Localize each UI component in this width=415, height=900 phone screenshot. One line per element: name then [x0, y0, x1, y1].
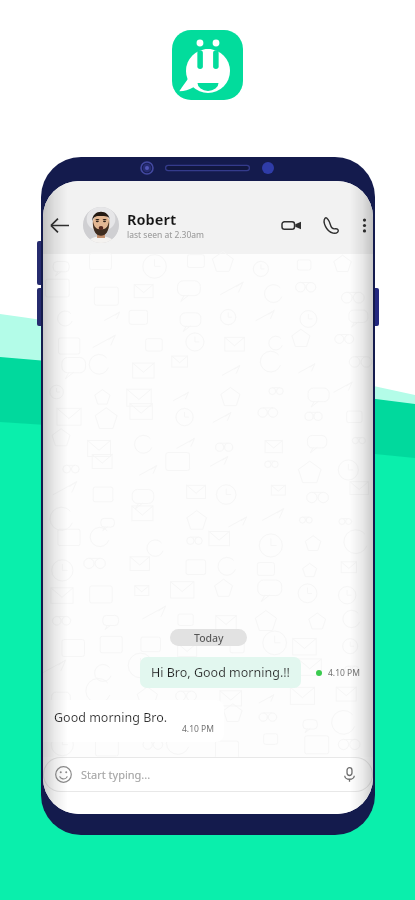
staticText: Good morning Bro.: [54, 709, 168, 726]
button[interactable]: Video call: [276, 210, 306, 240]
button[interactable]: Back: [44, 210, 74, 240]
button[interactable]: Call: [316, 210, 346, 240]
button[interactable]: Good morning Bro.: [43, 700, 224, 742]
staticText: last seen at 2.30am: [127, 229, 205, 241]
other: Voice message: [341, 766, 358, 783]
staticText: Hi Bro, Good morning.!!: [151, 664, 290, 681]
button[interactable]: Hi Bro, Good morning.!!: [140, 657, 301, 688]
button[interactable]: More options: [356, 212, 372, 238]
other: Emoji: [55, 766, 72, 783]
button[interactable]: Today: [170, 629, 247, 646]
staticText: Today: [194, 631, 224, 645]
button[interactable]: Robert profile photo: [83, 207, 119, 243]
staticText: 4.10 PM: [328, 667, 360, 679]
button[interactable]: Emoji: [55, 758, 358, 791]
staticText: 4.10 PM: [182, 723, 214, 735]
staticText: Start typing...: [81, 767, 151, 782]
staticText: Robert: [127, 209, 177, 229]
button[interactable]: App icon: [172, 30, 243, 100]
